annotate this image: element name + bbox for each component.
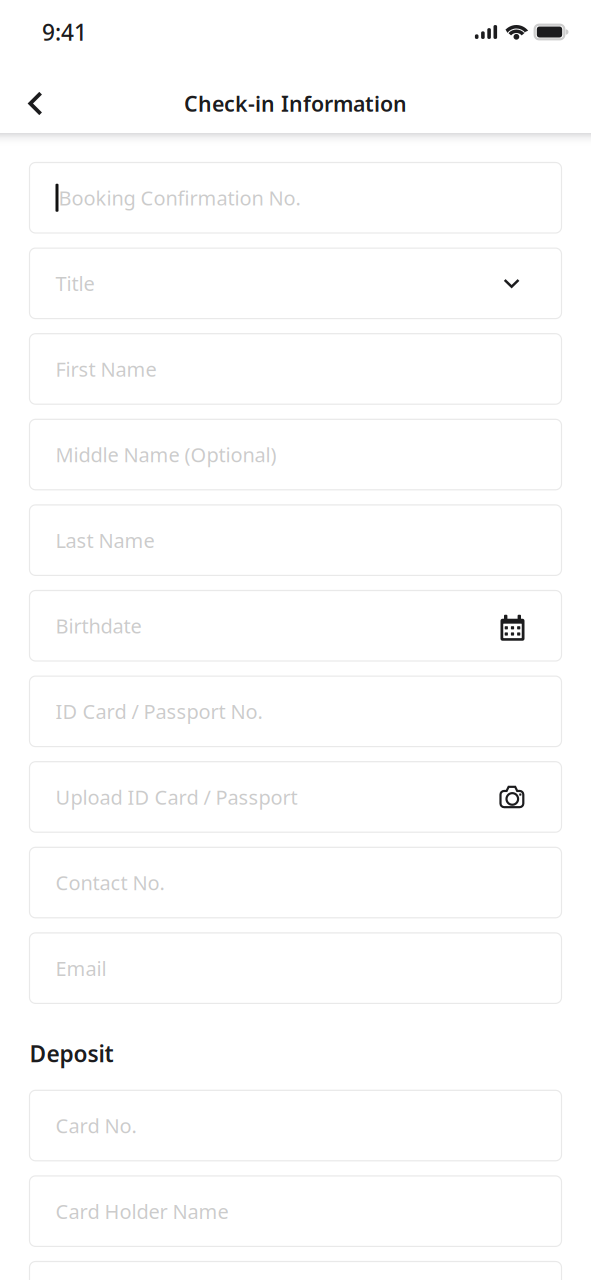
staticText: Card Holder Name [55, 1198, 228, 1224]
button[interactable]: ID Card / Passport No. [29, 676, 561, 747]
button[interactable]: Email [29, 933, 561, 1003]
staticText: Card No. [55, 1112, 136, 1139]
button[interactable]: Birthdate [29, 590, 561, 661]
staticText: 9:41 [42, 17, 87, 47]
staticText: Upload ID Card / Passport [55, 784, 297, 810]
button[interactable]: Title [29, 248, 561, 319]
staticText: Title [55, 270, 94, 297]
button[interactable]: Back [12, 80, 58, 126]
staticText: ID Card / Passport No. [55, 698, 262, 725]
staticText: Last Name [55, 527, 154, 553]
button[interactable]: Contact No. [29, 847, 561, 918]
button[interactable]: Booking Confirmation No. [29, 162, 561, 233]
button[interactable]: Upload ID Card / Passport [29, 762, 561, 832]
staticText: Birthdate [55, 612, 141, 639]
staticText: Check-in Information [184, 89, 407, 118]
staticText: Contact No. [55, 869, 164, 896]
staticText: Booking Confirmation No. [58, 184, 300, 211]
button[interactable]: Middle Name (Optional) [29, 419, 561, 490]
staticText: Middle Name (Optional) [55, 441, 276, 468]
staticText: First Name [55, 356, 156, 382]
button[interactable]: Card Holder Name [29, 1176, 561, 1246]
button[interactable]: Last Name [29, 505, 561, 575]
button[interactable]: First Name [29, 334, 561, 404]
staticText: Deposit [29, 1038, 113, 1069]
staticText: Email [55, 955, 106, 981]
button[interactable]: Card No. [29, 1090, 561, 1161]
